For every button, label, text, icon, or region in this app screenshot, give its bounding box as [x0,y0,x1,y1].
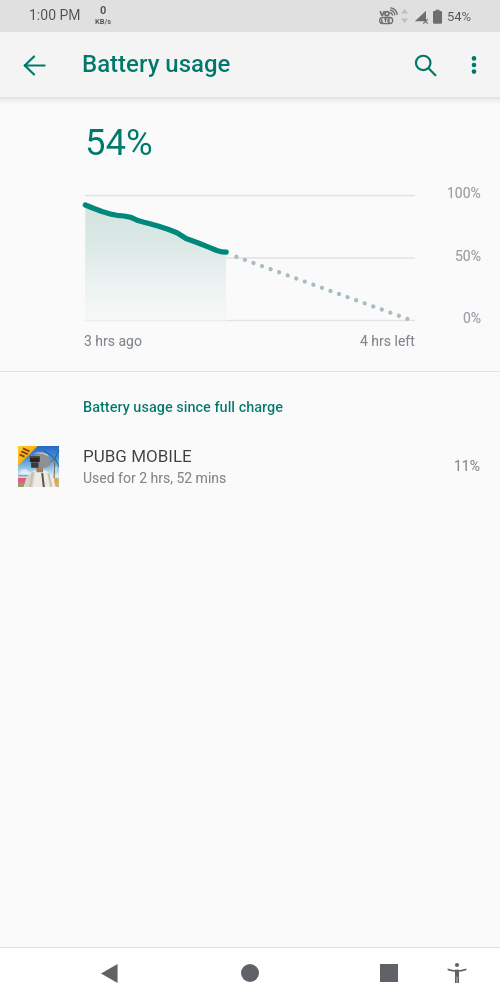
staticText: 3 hrs ago [84,333,142,349]
button[interactable]: Back [86,949,134,997]
button[interactable]: Home [226,949,274,997]
staticText: 54% [447,9,472,24]
staticText: Battery usage since full charge [83,399,284,416]
button[interactable]: Recent apps [365,949,413,997]
button[interactable]: Accessibility [433,949,481,997]
button[interactable]: Back [10,41,58,89]
button[interactable]: Search [401,41,449,89]
button[interactable]: PUBG MOBILE [0,434,500,498]
button[interactable]: More options [450,41,498,89]
staticText: 11% [454,458,480,474]
staticText: 0 [100,4,107,17]
staticText: Battery usage [82,50,231,78]
staticText: KB/s [95,17,112,26]
staticText: 50% [455,248,481,264]
staticText: 100% [447,185,481,201]
staticText: 54% [85,121,153,164]
staticText: PUBG MOBILE [83,446,192,466]
staticText: 1:00 PM [29,7,81,23]
staticText: 0% [463,310,482,326]
staticText: Used for 2 hrs, 52 mins [83,470,227,486]
staticText: 4 hrs left [360,333,415,349]
